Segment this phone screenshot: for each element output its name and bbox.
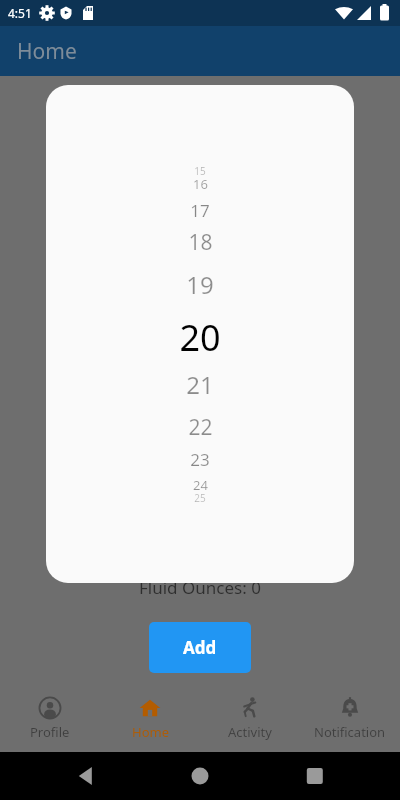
staticText: Notification xyxy=(314,723,386,741)
staticText: 21 xyxy=(186,368,214,401)
staticText: 22 xyxy=(188,413,213,442)
staticText: 18 xyxy=(188,228,213,257)
staticText: 23 xyxy=(190,448,210,471)
staticText: Activity xyxy=(228,723,272,741)
button[interactable]: Notification xyxy=(300,690,400,752)
staticText: Fluid Ounces: 0 xyxy=(139,576,261,599)
button[interactable]: Activity xyxy=(200,690,300,752)
button[interactable]: Add xyxy=(149,622,251,673)
staticText: Home xyxy=(17,37,77,66)
button[interactable]: Number picker xyxy=(46,85,354,583)
staticText: 20 xyxy=(179,313,221,362)
staticText: 17 xyxy=(190,199,210,222)
staticText: 19 xyxy=(186,268,214,301)
staticText: 24 xyxy=(193,476,208,494)
staticText: 16 xyxy=(193,175,208,193)
button[interactable]: Home xyxy=(100,690,200,752)
staticText: Add xyxy=(183,636,217,659)
staticText: Home xyxy=(132,723,169,741)
staticText: 15 xyxy=(194,164,206,178)
button[interactable]: Profile xyxy=(0,690,100,752)
staticText: 25 xyxy=(194,491,206,505)
staticText: Profile xyxy=(30,723,70,741)
staticText: 4:51 xyxy=(8,5,32,21)
